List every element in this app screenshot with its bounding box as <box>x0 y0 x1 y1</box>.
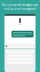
staticText: end-to-end encrypted <box>4 7 36 11</box>
staticText: Your personal messages are <box>1 3 38 7</box>
